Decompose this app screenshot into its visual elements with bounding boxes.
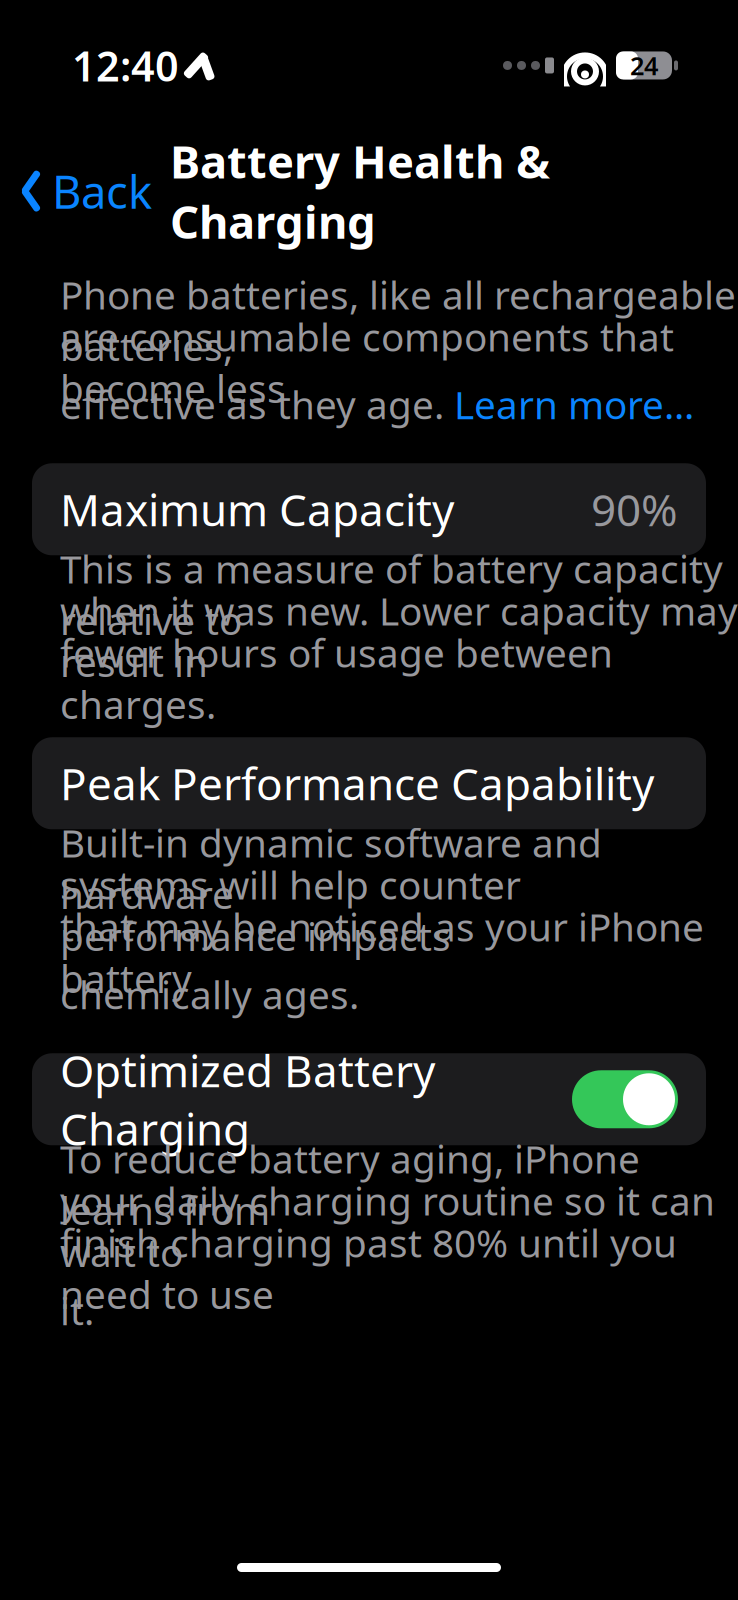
staticText: Phone batteries, like all rechargeable b… [60,269,736,372]
staticText: chemically ages. [60,969,359,1020]
button[interactable]: Optimized Battery Charging [32,1053,706,1145]
staticText: it. [60,1285,94,1336]
staticText: systems will help counter performance im… [60,859,521,962]
staticText: your daily charging routine so it can wa… [60,1175,715,1278]
staticText: effective as they age. [60,379,454,430]
button[interactable]: Maximum Capacity [32,463,706,555]
staticText: are consumable components that become le… [60,311,674,414]
staticText: Peak Performance Capability [60,754,654,812]
staticText: finish charging past 80% until you need … [60,1217,677,1320]
staticText: Maximum Capacity [60,480,454,538]
staticText: Optimized Battery Charging [60,1041,435,1158]
button[interactable]: Learn more... [454,379,694,430]
staticText: 90% [591,480,678,538]
staticText: Battery Health & Charging [170,131,550,251]
staticText: To reduce battery aging, iPhone learns f… [60,1133,640,1236]
button[interactable]: Peak Performance Capability [32,737,706,829]
staticText: Learn more... [454,379,694,430]
staticText: Built-in dynamic software and hardware [60,817,602,920]
staticText: that may be noticed as your iPhone batte… [60,901,704,1004]
button[interactable]: Back [0,151,158,231]
staticText: This is a measure of battery capacity re… [60,543,723,646]
staticText: 12:40 [72,38,179,93]
staticText: fewer hours of usage between charges. [60,627,613,730]
staticText: 24 [630,49,658,82]
staticText: when it was new. Lower capacity may resu… [60,585,738,688]
staticText: Back [52,161,152,221]
